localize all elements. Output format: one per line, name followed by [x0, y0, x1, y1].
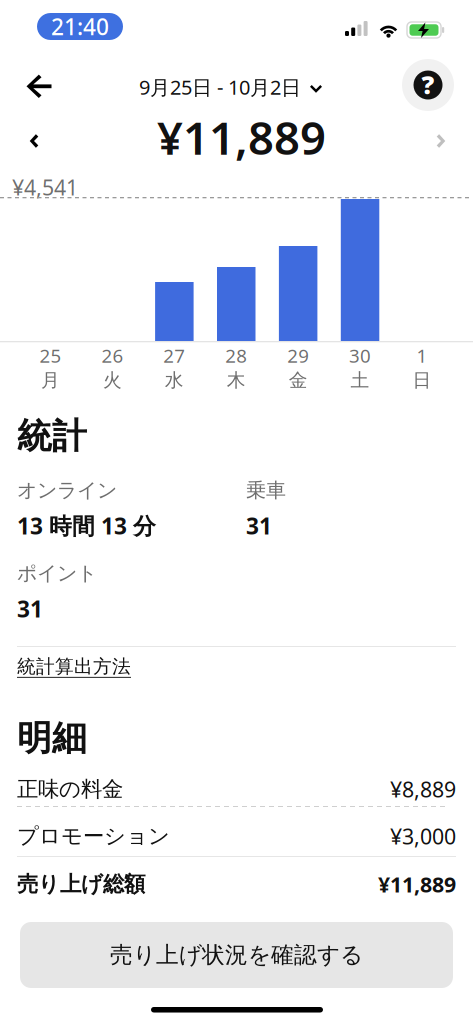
- staticText: 1: [416, 343, 427, 368]
- button[interactable]: 売り上げ状況を確認する: [20, 922, 453, 988]
- staticText: 水: [165, 369, 184, 392]
- button[interactable]: 9月25日 - 10月2日: [139, 76, 322, 98]
- staticText: プロモーション: [17, 823, 170, 849]
- staticText: 乗車: [246, 478, 286, 503]
- staticText: 正味の料金: [17, 776, 123, 802]
- staticText: 売り上げ状況を確認する: [110, 941, 363, 969]
- staticText: 統計算出方法: [17, 655, 131, 678]
- staticText: 金: [289, 369, 308, 392]
- staticText: 9月25日 - 10月2日: [139, 74, 301, 100]
- staticText: 26: [101, 343, 123, 368]
- staticText: 31: [246, 511, 272, 541]
- staticText: 28: [225, 343, 247, 368]
- button[interactable]: 統計算出方法: [17, 655, 131, 678]
- staticText: ¥8,889: [390, 775, 456, 803]
- staticText: 30: [349, 343, 371, 368]
- staticText: ¥4,541: [12, 173, 78, 201]
- button[interactable]: Next period: [430, 131, 452, 151]
- staticText: 統計: [17, 415, 87, 458]
- button[interactable]: Back: [26, 75, 52, 98]
- staticText: 25: [40, 343, 62, 368]
- staticText: 29: [287, 343, 309, 368]
- staticText: ¥11,889: [378, 870, 456, 898]
- staticText: 火: [103, 369, 122, 392]
- staticText: 21:40: [51, 11, 109, 41]
- staticText: 31: [17, 594, 43, 624]
- staticText: ¥11,889: [157, 107, 326, 167]
- staticText: ?: [421, 68, 434, 101]
- staticText: 13 時間 13 分: [17, 511, 156, 541]
- button[interactable]: Help: [402, 59, 454, 111]
- staticText: 売り上げ総額: [17, 871, 145, 897]
- staticText: ¥3,000: [390, 822, 456, 850]
- staticText: 27: [163, 343, 185, 368]
- staticText: ポイント: [17, 561, 97, 586]
- staticText: 月: [41, 369, 60, 392]
- staticText: オンライン: [17, 478, 117, 503]
- button[interactable]: Previous period: [23, 131, 45, 151]
- staticText: 木: [227, 369, 246, 392]
- staticText: 日: [412, 369, 431, 392]
- staticText: 明細: [17, 717, 87, 760]
- staticText: 土: [351, 369, 370, 392]
